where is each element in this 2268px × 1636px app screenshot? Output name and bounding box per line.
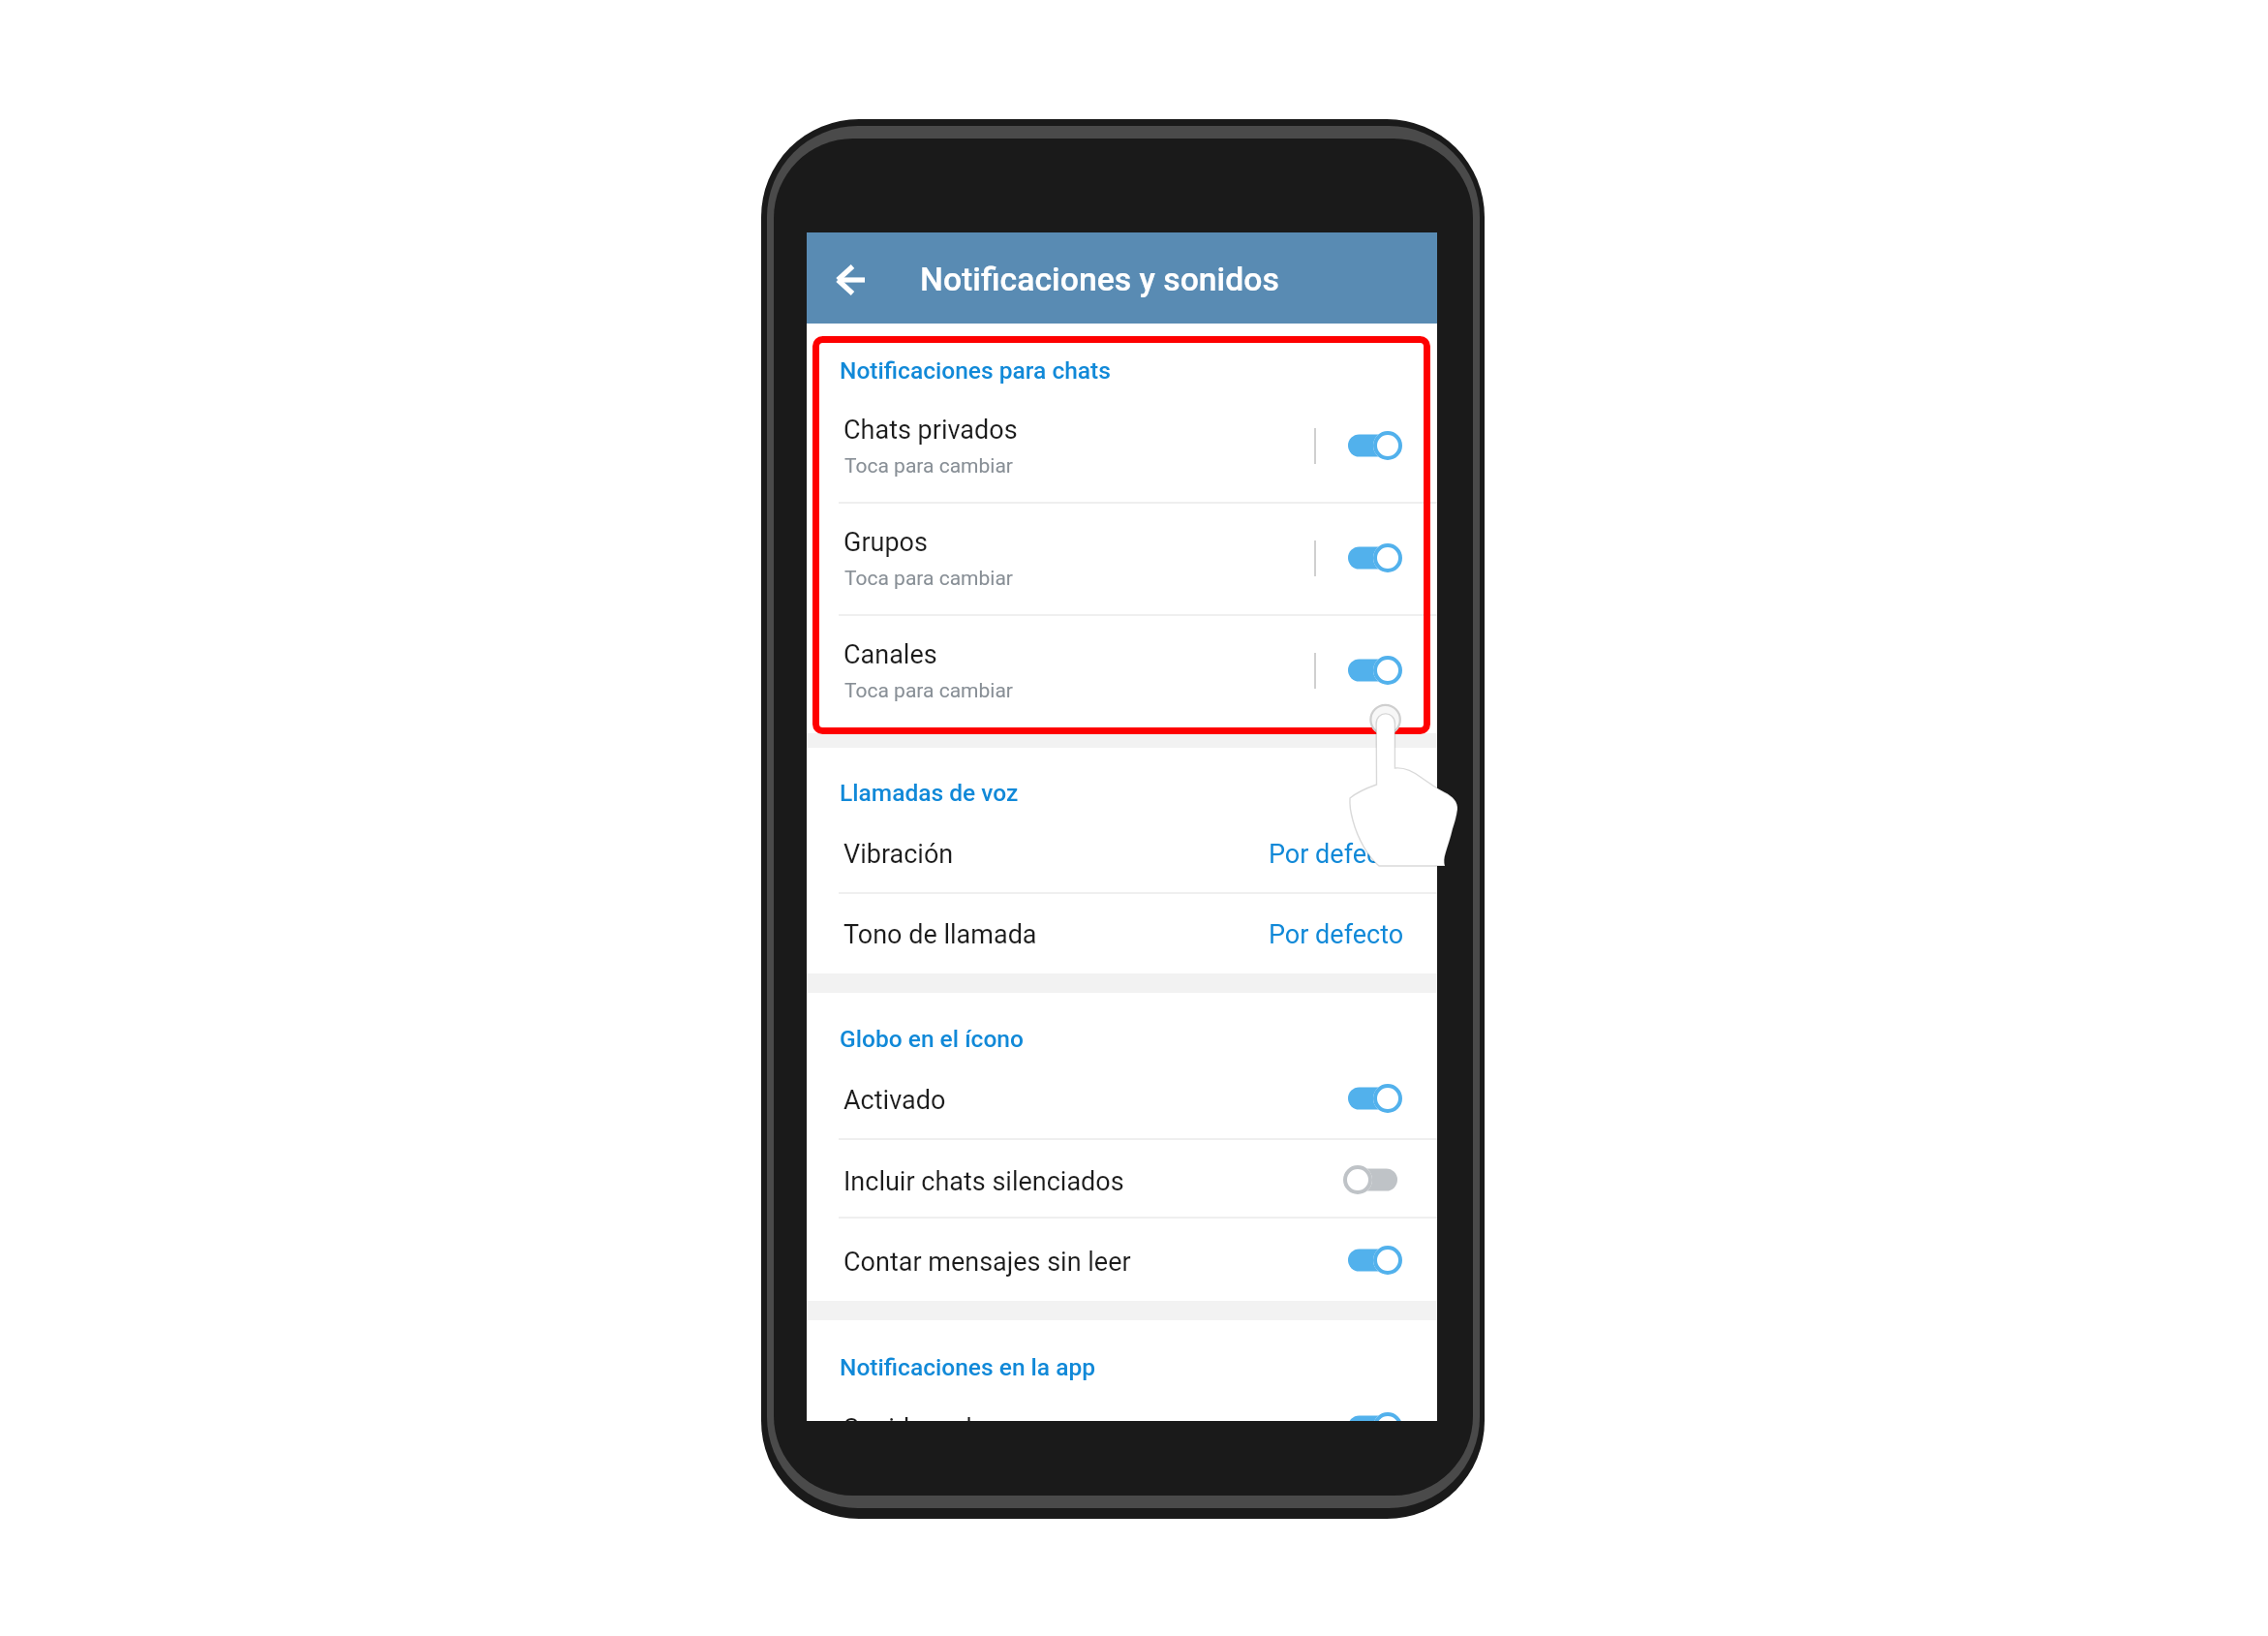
staticText: Por defecto xyxy=(1269,839,1404,870)
staticText: Notificaciones y sonidos xyxy=(920,261,1279,298)
staticText: Globo en el ícono xyxy=(840,1025,1024,1053)
button[interactable]: Incluir chats silenciados xyxy=(807,1151,1437,1230)
button[interactable]: Contar mensajes sin leer xyxy=(807,1231,1437,1311)
button[interactable]: Vibración xyxy=(807,823,1437,903)
staticText: Notificaciones para chats xyxy=(840,356,1111,385)
staticText: Tono de llamada xyxy=(843,919,1037,950)
staticText: Llamadas de voz xyxy=(840,779,1019,807)
staticText: Toca para cambiar xyxy=(844,679,1013,703)
button[interactable]: Activado xyxy=(807,1069,1437,1149)
staticText: Toca para cambiar xyxy=(844,567,1013,591)
button[interactable]: Back xyxy=(813,256,862,304)
staticText: Activado xyxy=(843,1085,946,1116)
staticText: Incluir chats silenciados xyxy=(843,1166,1124,1197)
button[interactable]: Sonido en la app xyxy=(807,1398,1437,1421)
staticText: Notificaciones en la app xyxy=(840,1353,1096,1381)
staticText: Contar mensajes sin leer xyxy=(843,1247,1131,1278)
button[interactable]: Canales xyxy=(807,614,1437,726)
button[interactable]: Chats privados xyxy=(807,389,1437,502)
staticText: Chats privados xyxy=(843,415,1018,446)
staticText: Toca para cambiar xyxy=(844,454,1013,478)
staticText: Por defecto xyxy=(1269,919,1404,950)
staticText: Sonido en la app xyxy=(843,1413,1037,1421)
staticText: Vibración xyxy=(843,839,954,870)
button[interactable]: Tono de llamada xyxy=(807,904,1437,983)
staticText: Grupos xyxy=(843,527,928,558)
button[interactable]: Grupos xyxy=(807,502,1437,614)
staticText: Canales xyxy=(843,639,937,670)
